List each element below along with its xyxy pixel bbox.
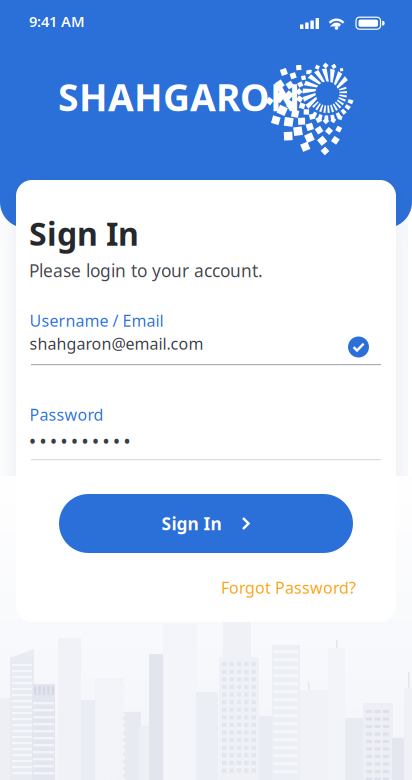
staticText: 9:41 AM [29,11,85,31]
staticText: Password [29,404,103,425]
button[interactable]: Forgot Password? [221,577,356,598]
staticText: Forgot Password? [221,577,356,598]
button[interactable]: Sign In [59,494,353,553]
staticText: Username / Email [29,310,163,331]
staticText: Sign In [29,212,139,254]
staticText: Sign In [161,512,221,535]
staticText: shahgaron@email.com [29,333,203,354]
staticText: SHAHGARON [58,72,300,122]
staticText: Please login to your account. [29,259,263,282]
staticText: •••••••••• [29,430,130,451]
